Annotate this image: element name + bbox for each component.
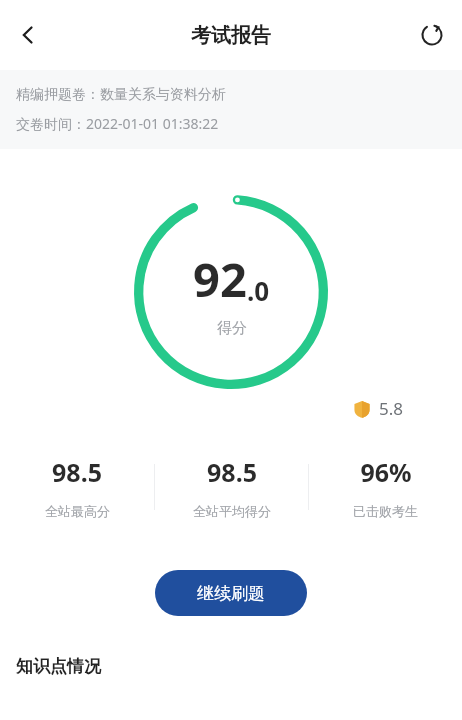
staticText: 继续刷题 [197,583,265,604]
staticText: 交卷时间：2022-01-01 01:38:22 [16,114,219,133]
staticText: 全站平均得分 [193,503,271,519]
button[interactable]: 返回 [4,11,52,59]
staticText: 98.5 [207,455,257,489]
staticText: 知识点情况 [16,656,101,677]
staticText: 精编押题卷：数量关系与资料分析 [16,86,226,104]
button[interactable]: 继续刷题 [155,570,307,616]
button[interactable]: 刷新 [408,11,456,59]
staticText: 92 [193,247,247,311]
button[interactable]: 96% [309,455,462,519]
staticText: .0 [247,273,270,308]
staticText: 96% [360,455,412,489]
staticText: 得分 [217,319,247,338]
button[interactable]: 98.5 [0,455,154,519]
button[interactable]: 98.5 [155,455,308,519]
staticText: 已击败考生 [353,503,418,519]
staticText: 全站最高分 [45,503,110,519]
staticText: 5.8 [379,397,404,420]
staticText: 考试报告 [191,23,271,48]
staticText: 98.5 [52,455,102,489]
